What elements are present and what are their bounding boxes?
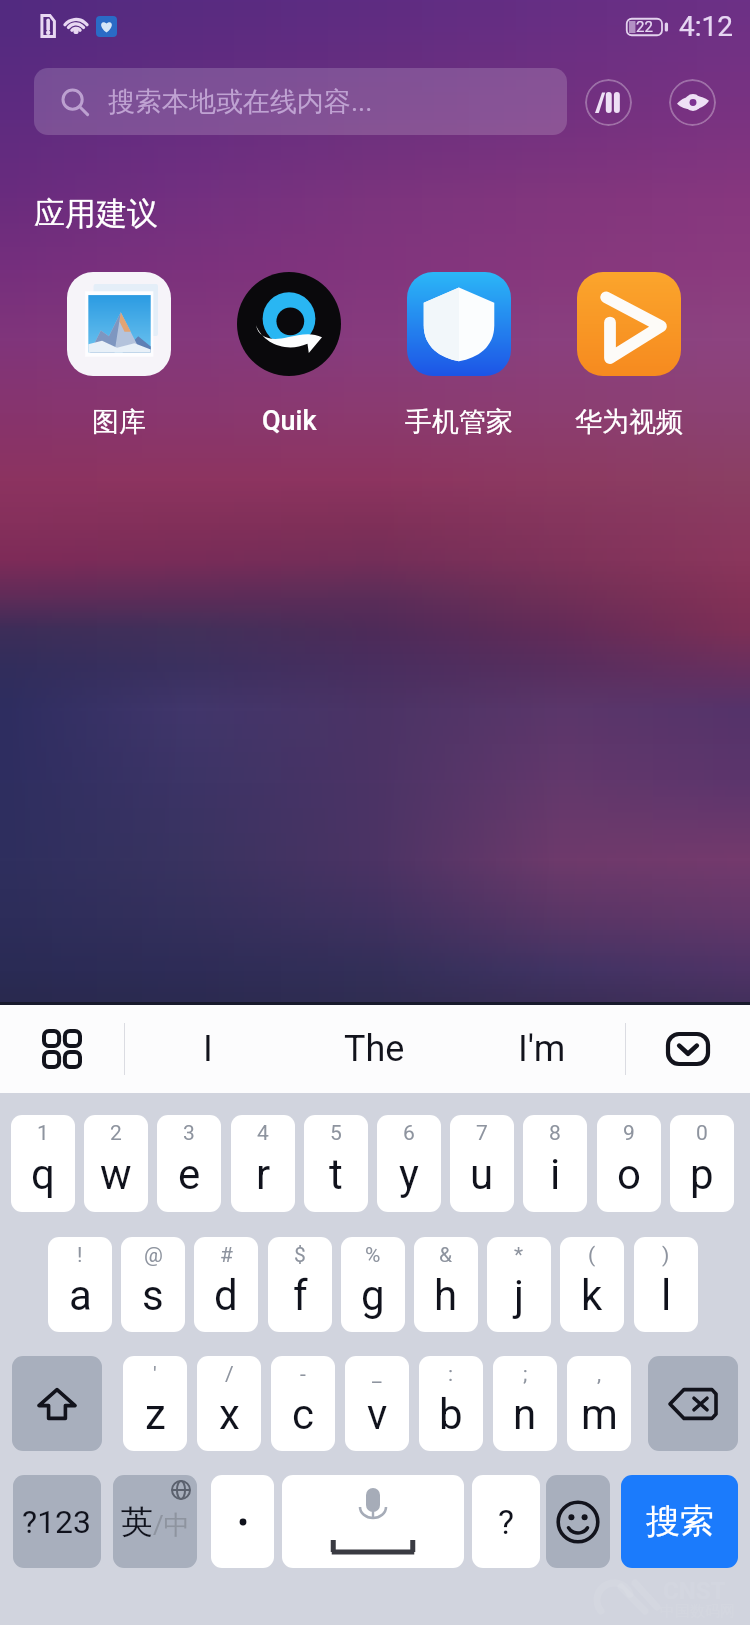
staticText: 英: [121, 1502, 153, 1542]
staticText: &: [439, 1243, 453, 1268]
button[interactable]: 图库: [34, 272, 204, 439]
button[interactable]: Keyboard layouts: [0, 1005, 124, 1093]
button[interactable]: 7: [450, 1115, 514, 1212]
staticText: q: [31, 1150, 55, 1199]
staticText: ?123: [22, 1503, 92, 1541]
staticText: a: [69, 1271, 92, 1320]
staticText: k: [581, 1271, 603, 1320]
staticText: I: [203, 1028, 213, 1070]
staticText: 2: [110, 1121, 122, 1146]
staticText: 手机管家: [405, 405, 513, 439]
button[interactable]: 1: [11, 1115, 75, 1212]
button[interactable]: ?: [472, 1475, 540, 1568]
staticText: g: [361, 1271, 385, 1320]
staticText: /中: [153, 1509, 190, 1542]
button[interactable]: I: [125, 1005, 291, 1093]
staticText: t: [329, 1150, 343, 1199]
staticText: ;: [523, 1362, 528, 1387]
staticText: 搜索: [646, 1500, 714, 1543]
staticText: The: [344, 1028, 405, 1070]
staticText: f: [293, 1271, 308, 1320]
staticText: (: [588, 1243, 596, 1268]
staticText: i: [550, 1150, 561, 1199]
staticText: $: [294, 1243, 306, 1268]
button[interactable]: Quik: [204, 272, 374, 437]
button[interactable]: Space: [282, 1475, 464, 1568]
button[interactable]: ;: [493, 1356, 557, 1451]
button[interactable]: *: [487, 1237, 551, 1332]
button[interactable]: Shift: [12, 1356, 102, 1451]
button[interactable]: 搜索: [621, 1475, 738, 1568]
button[interactable]: /: [197, 1356, 261, 1451]
staticText: m: [581, 1390, 618, 1439]
staticText: _: [372, 1362, 382, 1387]
button[interactable]: (: [560, 1237, 624, 1332]
button[interactable]: 6: [377, 1115, 441, 1212]
button[interactable]: #: [194, 1237, 258, 1332]
button[interactable]: &: [414, 1237, 478, 1332]
button[interactable]: Backspace: [648, 1356, 738, 1451]
staticText: 6: [403, 1121, 415, 1146]
staticText: :: [448, 1362, 454, 1387]
staticText: -: [300, 1362, 306, 1387]
button[interactable]: 4: [231, 1115, 295, 1212]
button[interactable]: 华为视频: [544, 272, 714, 439]
staticText: h: [434, 1271, 458, 1320]
button[interactable]: 搜索本地或在线内容...: [34, 68, 567, 135]
staticText: 5: [330, 1121, 342, 1146]
button[interactable]: 9: [597, 1115, 661, 1212]
staticText: r: [256, 1150, 271, 1199]
staticText: *: [514, 1243, 524, 1268]
button[interactable]: -: [271, 1356, 335, 1451]
button[interactable]: Visual search: [669, 79, 716, 126]
staticText: I'm: [518, 1028, 566, 1070]
button[interactable]: Voice search: [585, 79, 632, 126]
button[interactable]: Emoji: [546, 1475, 610, 1568]
staticText: 4: [257, 1121, 269, 1146]
button[interactable]: 0: [670, 1115, 734, 1212]
button[interactable]: 3: [157, 1115, 221, 1212]
staticText: b: [439, 1390, 463, 1439]
button[interactable]: _: [345, 1356, 409, 1451]
staticText: j: [514, 1271, 525, 1320]
staticText: o: [617, 1150, 641, 1199]
button[interactable]: :: [419, 1356, 483, 1451]
button[interactable]: 8: [523, 1115, 587, 1212]
button[interactable]: 2: [84, 1115, 148, 1212]
staticText: 华为视频: [575, 405, 683, 439]
button[interactable]: %: [341, 1237, 405, 1332]
staticText: 4:12: [679, 10, 733, 43]
staticText: 7: [476, 1121, 488, 1146]
button[interactable]: The: [291, 1005, 458, 1093]
staticText: p: [690, 1150, 714, 1199]
staticText: s: [142, 1271, 164, 1320]
button[interactable]: @: [121, 1237, 185, 1332]
staticText: u: [470, 1150, 494, 1199]
staticText: 3: [183, 1121, 195, 1146]
button[interactable]: !: [48, 1237, 112, 1332]
staticText: /: [225, 1362, 234, 1387]
button[interactable]: 5: [304, 1115, 368, 1212]
staticText: z: [145, 1390, 166, 1439]
staticText: v: [367, 1390, 388, 1439]
staticText: 1: [37, 1121, 49, 1146]
button[interactable]: ): [634, 1237, 698, 1332]
staticText: e: [178, 1150, 201, 1199]
button[interactable]: Hide keyboard: [626, 1005, 750, 1093]
staticText: n: [513, 1390, 537, 1439]
staticText: 应用建议: [34, 194, 158, 233]
button[interactable]: I'm: [458, 1005, 625, 1093]
button[interactable]: [211, 1475, 274, 1568]
staticText: y: [399, 1150, 419, 1199]
button[interactable]: ,: [567, 1356, 631, 1451]
button[interactable]: $: [268, 1237, 332, 1332]
staticText: @: [144, 1243, 163, 1268]
staticText: ': [153, 1362, 157, 1387]
button[interactable]: 英: [113, 1475, 197, 1568]
button[interactable]: ': [123, 1356, 187, 1451]
staticText: x: [219, 1390, 240, 1439]
button[interactable]: ?123: [13, 1475, 101, 1568]
button[interactable]: 手机管家: [374, 272, 544, 439]
